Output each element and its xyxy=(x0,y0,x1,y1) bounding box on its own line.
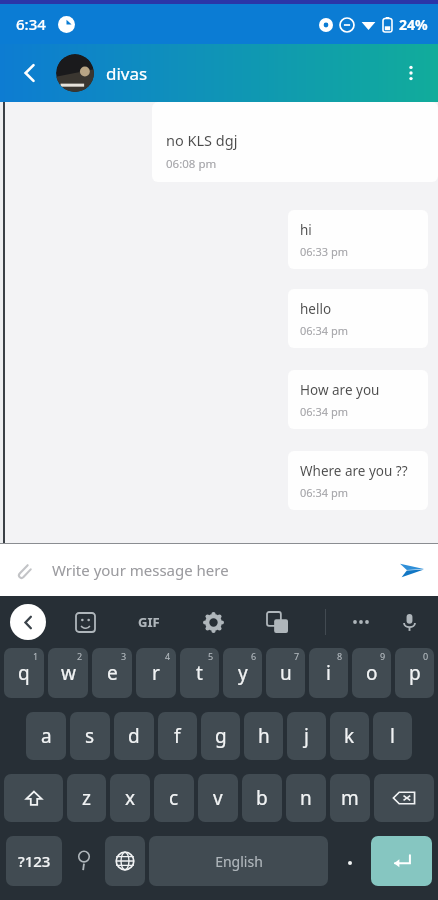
staticText: 2 xyxy=(77,650,83,662)
staticText: 8 xyxy=(337,650,343,662)
button[interactable]: m xyxy=(330,774,370,822)
button[interactable]: b xyxy=(242,774,282,822)
button[interactable]: Where are you ?? xyxy=(288,451,428,510)
staticText: t xyxy=(196,660,203,686)
button[interactable]: Back xyxy=(10,53,50,93)
button[interactable]: r xyxy=(136,648,176,698)
staticText: 3 xyxy=(121,650,127,662)
button[interactable]: x xyxy=(110,774,150,822)
staticText: divas xyxy=(106,62,148,85)
staticText: k xyxy=(344,723,355,749)
staticText: 24% xyxy=(399,15,428,34)
button[interactable]: w xyxy=(48,648,88,698)
staticText: 4 xyxy=(165,650,171,662)
button[interactable]: l xyxy=(373,712,412,760)
button[interactable]: ?123 xyxy=(6,836,62,886)
button[interactable]: i xyxy=(309,648,348,698)
staticText: 5 xyxy=(208,650,214,662)
staticText: GIF xyxy=(138,613,160,631)
button[interactable]: More xyxy=(344,605,378,639)
staticText: Write your message here xyxy=(52,560,229,580)
staticText: r xyxy=(152,660,160,686)
button[interactable]: hello xyxy=(288,289,428,348)
button[interactable]: GIF xyxy=(132,605,166,639)
button[interactable]: v xyxy=(198,774,238,822)
button[interactable]: f xyxy=(158,712,197,760)
button[interactable]: How are you xyxy=(288,370,428,429)
staticText: h xyxy=(258,723,270,749)
button[interactable]: Shift xyxy=(4,774,63,822)
staticText: p xyxy=(409,660,421,686)
button[interactable]: q xyxy=(4,648,44,698)
staticText: 6:34 xyxy=(16,14,46,34)
staticText: g xyxy=(215,723,227,749)
button[interactable]: u xyxy=(266,648,305,698)
staticText: n xyxy=(300,785,312,811)
staticText: m xyxy=(341,785,359,811)
staticText: hi xyxy=(300,221,312,239)
button[interactable]: s xyxy=(70,712,110,760)
button[interactable]: t xyxy=(180,648,219,698)
button[interactable]: Translate xyxy=(260,605,294,639)
button[interactable]: c xyxy=(154,774,194,822)
button[interactable]: p xyxy=(395,648,434,698)
button[interactable]: Enter xyxy=(371,836,432,886)
staticText: 06:34 pm xyxy=(300,485,349,500)
staticText: a xyxy=(41,723,52,749)
button[interactable]: Stickers xyxy=(68,605,102,639)
staticText: Where are you ?? xyxy=(300,462,408,480)
button[interactable]: y xyxy=(223,648,262,698)
staticText: d xyxy=(128,723,140,749)
button[interactable]: e xyxy=(92,648,132,698)
staticText: 06:08 pm xyxy=(166,156,217,172)
button[interactable]: Write your message here xyxy=(46,544,386,596)
staticText: l xyxy=(390,723,395,749)
staticText: no KLS dgj xyxy=(166,130,238,150)
button[interactable]: Change language xyxy=(105,836,145,886)
button[interactable]: n xyxy=(286,774,326,822)
button[interactable]: z xyxy=(67,774,106,822)
staticText: 6 xyxy=(251,650,257,662)
staticText: English xyxy=(215,852,263,871)
staticText: o xyxy=(366,660,378,686)
button[interactable]: Emoji and comma xyxy=(66,836,101,886)
staticText: f xyxy=(174,723,181,749)
staticText: b xyxy=(256,785,268,811)
staticText: e xyxy=(107,660,118,686)
button[interactable]: Voice input xyxy=(392,605,426,639)
button[interactable]: d xyxy=(114,712,154,760)
staticText: 0 xyxy=(423,650,429,662)
staticText: s xyxy=(85,723,95,749)
staticText: u xyxy=(280,660,292,686)
staticText: 7 xyxy=(294,650,300,662)
button[interactable]: English xyxy=(149,836,328,886)
button[interactable]: no KLS dgj xyxy=(152,102,438,182)
button[interactable]: o xyxy=(352,648,391,698)
staticText: 06:33 pm xyxy=(300,244,349,259)
button[interactable]: Backspace xyxy=(374,774,434,822)
button[interactable]: Period xyxy=(332,836,367,886)
staticText: hello xyxy=(300,300,332,318)
staticText: w xyxy=(61,660,76,686)
staticText: 06:34 pm xyxy=(300,404,349,419)
staticText: y xyxy=(238,660,248,686)
staticText: 1 xyxy=(33,650,39,662)
button[interactable]: a xyxy=(26,712,66,760)
button[interactable]: h xyxy=(244,712,283,760)
button[interactable]: hi xyxy=(288,210,428,269)
staticText: i xyxy=(326,660,331,686)
button[interactable]: j xyxy=(287,712,326,760)
button[interactable]: More options xyxy=(390,52,432,94)
button[interactable]: g xyxy=(201,712,240,760)
button[interactable]: divas xyxy=(56,54,148,92)
staticText: c xyxy=(169,785,179,811)
button[interactable]: Attach xyxy=(0,547,46,593)
button[interactable]: Settings xyxy=(196,605,230,639)
button[interactable]: Send xyxy=(386,544,438,596)
button[interactable]: Close toolbar xyxy=(10,604,46,640)
button[interactable]: k xyxy=(330,712,369,760)
staticText: ?123 xyxy=(18,851,51,871)
staticText: z xyxy=(82,785,91,811)
staticText: x xyxy=(125,785,136,811)
staticText: j xyxy=(304,723,309,749)
